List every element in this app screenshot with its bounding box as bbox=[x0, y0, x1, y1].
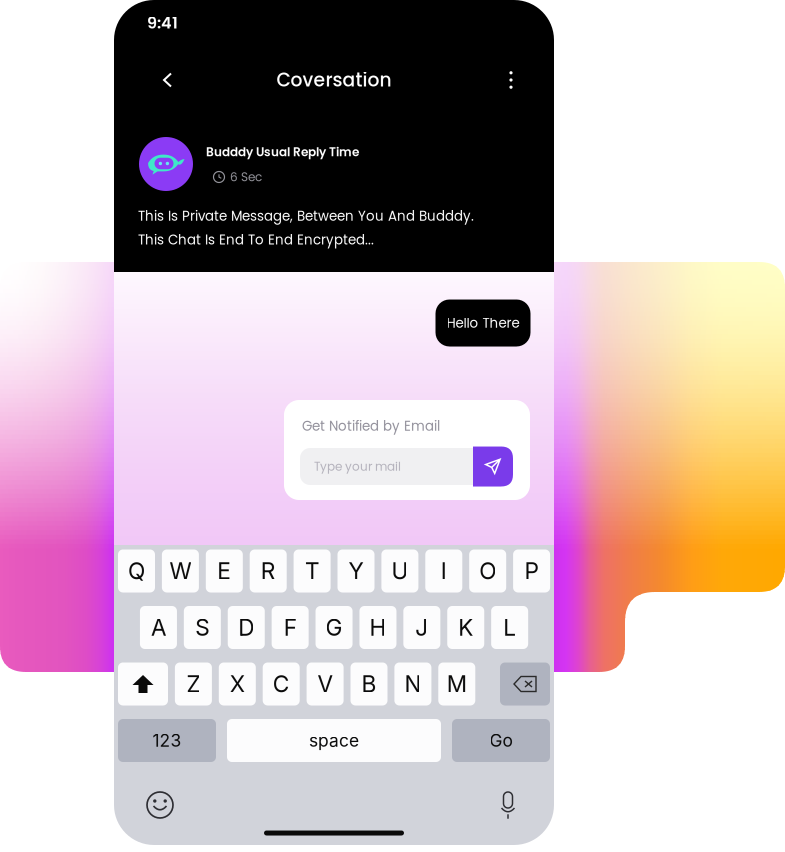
staticText: I bbox=[441, 557, 447, 585]
staticText: 6 Sec bbox=[230, 169, 262, 185]
button[interactable]: I bbox=[425, 549, 462, 592]
button[interactable]: O bbox=[469, 549, 506, 592]
button[interactable]: W bbox=[162, 549, 199, 592]
button[interactable]: K bbox=[447, 606, 484, 649]
staticText: A bbox=[151, 614, 166, 641]
staticText: Go bbox=[489, 730, 512, 751]
button[interactable]: Backspace bbox=[500, 662, 550, 705]
staticText: P bbox=[525, 557, 539, 585]
button[interactable]: Dictate bbox=[498, 790, 518, 820]
staticText: Q bbox=[128, 557, 145, 585]
staticText: G bbox=[326, 614, 343, 641]
staticText: L bbox=[503, 614, 516, 641]
button[interactable]: U bbox=[381, 549, 418, 592]
staticText: Hello There bbox=[446, 314, 519, 332]
button[interactable]: B bbox=[350, 662, 387, 705]
staticText: This Chat Is End To End Encrypted... bbox=[138, 230, 374, 249]
staticText: W bbox=[169, 557, 191, 585]
staticText: Z bbox=[186, 670, 200, 698]
staticText: U bbox=[391, 557, 408, 585]
button[interactable]: 123 bbox=[118, 719, 216, 762]
staticText: Coversation bbox=[276, 67, 391, 93]
button[interactable]: Shift bbox=[118, 662, 168, 705]
staticText: Type your mail bbox=[314, 458, 401, 475]
button[interactable]: Q bbox=[118, 549, 155, 592]
button[interactable]: M bbox=[438, 662, 475, 705]
button[interactable]: Send bbox=[473, 446, 513, 486]
button[interactable]: Y bbox=[337, 549, 374, 592]
button[interactable]: Emoji bbox=[146, 791, 174, 819]
staticText: E bbox=[217, 557, 231, 585]
staticText: T bbox=[305, 557, 319, 585]
staticText: K bbox=[458, 614, 473, 641]
button[interactable]: A bbox=[140, 606, 177, 649]
button[interactable]: H bbox=[359, 606, 396, 649]
button[interactable]: G bbox=[316, 606, 353, 649]
staticText: D bbox=[238, 614, 254, 641]
button[interactable]: S bbox=[184, 606, 221, 649]
button[interactable]: Z bbox=[175, 662, 212, 705]
staticText: F bbox=[284, 614, 297, 641]
button[interactable]: D bbox=[228, 606, 265, 649]
button[interactable]: F bbox=[272, 606, 309, 649]
staticText: X bbox=[230, 670, 245, 698]
staticText: H bbox=[369, 614, 386, 641]
staticText: 9:41 bbox=[147, 12, 178, 34]
staticText: S bbox=[195, 614, 209, 641]
staticText: 123 bbox=[152, 730, 181, 751]
staticText: N bbox=[404, 670, 421, 698]
button[interactable]: T bbox=[294, 549, 331, 592]
staticText: C bbox=[273, 670, 290, 698]
button[interactable]: Back bbox=[161, 72, 174, 88]
staticText: M bbox=[447, 670, 467, 698]
button[interactable]: space bbox=[227, 719, 441, 762]
button[interactable]: V bbox=[307, 662, 344, 705]
staticText: space bbox=[309, 730, 359, 751]
button[interactable]: Go bbox=[452, 719, 550, 762]
button[interactable]: P bbox=[513, 549, 550, 592]
button[interactable]: X bbox=[219, 662, 256, 705]
staticText: Budddy Usual Reply Time bbox=[206, 144, 359, 160]
button[interactable]: N bbox=[394, 662, 431, 705]
staticText: O bbox=[479, 557, 496, 585]
button[interactable]: J bbox=[403, 606, 440, 649]
button[interactable]: More options bbox=[504, 71, 518, 89]
staticText: Get Notified by Email bbox=[302, 417, 440, 435]
staticText: Y bbox=[348, 557, 363, 585]
button[interactable]: R bbox=[250, 549, 287, 592]
staticText: This Is Private Message, Between You And… bbox=[138, 207, 474, 225]
button[interactable]: L bbox=[491, 606, 528, 649]
staticText: J bbox=[415, 614, 428, 641]
button[interactable]: C bbox=[263, 662, 300, 705]
button[interactable]: E bbox=[206, 549, 243, 592]
staticText: R bbox=[261, 557, 276, 585]
staticText: V bbox=[318, 670, 333, 698]
staticText: B bbox=[361, 670, 376, 698]
